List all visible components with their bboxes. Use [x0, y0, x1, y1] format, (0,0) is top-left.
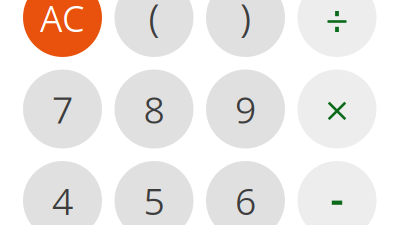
staticText: 7	[52, 84, 73, 134]
button[interactable]: 4	[23, 161, 102, 225]
staticText: 4	[52, 175, 73, 225]
button[interactable]: (	[114, 0, 193, 57]
button[interactable]: Multiply	[297, 69, 376, 148]
staticText: 6	[235, 175, 256, 225]
staticText: 8	[143, 84, 164, 134]
button[interactable]: 9	[206, 69, 285, 148]
staticText: 9	[235, 84, 256, 134]
staticText: (	[148, 0, 159, 44]
button[interactable]: )	[206, 0, 285, 57]
staticText: )	[240, 0, 251, 44]
button[interactable]: Divide	[297, 0, 376, 57]
button[interactable]: 5	[114, 161, 193, 225]
button[interactable]: AC	[23, 0, 102, 57]
staticText: AC	[40, 0, 85, 42]
button[interactable]: 6	[206, 161, 285, 225]
staticText: 5	[143, 175, 164, 225]
button[interactable]: Subtract	[297, 161, 376, 225]
button[interactable]: 7	[23, 69, 102, 148]
button[interactable]: 8	[114, 69, 193, 148]
